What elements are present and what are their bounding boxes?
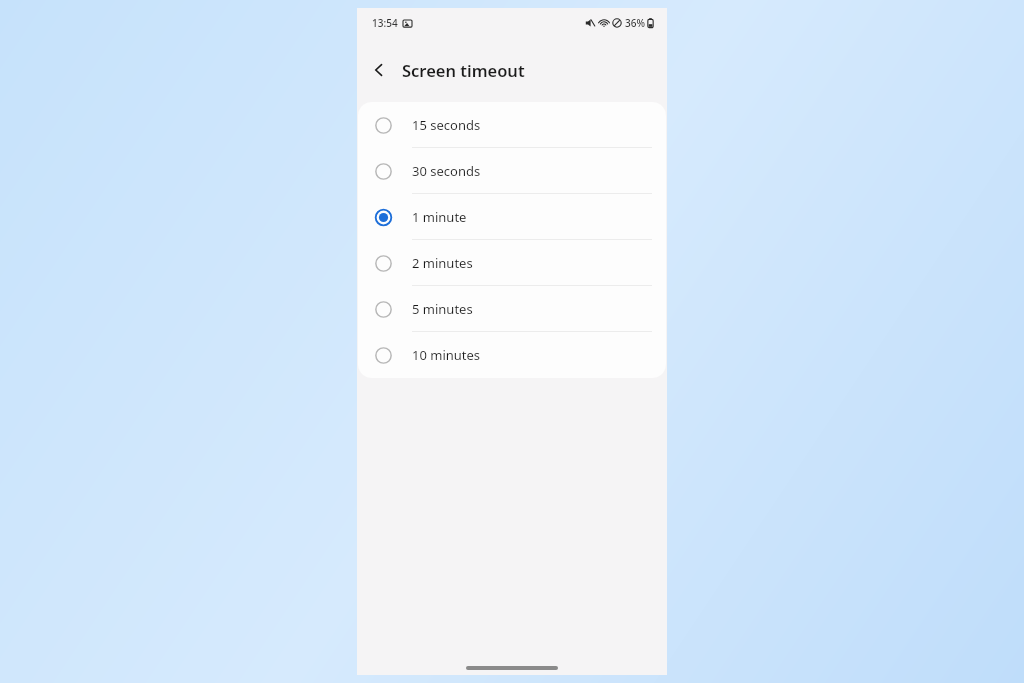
- staticText: Screen timeout: [402, 59, 525, 81]
- button[interactable]: 30 seconds: [358, 148, 666, 194]
- button[interactable]: Back: [357, 48, 401, 92]
- button[interactable]: 2 minutes: [358, 240, 666, 286]
- staticText: 15 seconds: [412, 116, 481, 134]
- staticText: 10 minutes: [412, 346, 481, 364]
- staticText: 13:54: [372, 16, 398, 30]
- staticText: 1 minute: [412, 208, 467, 226]
- staticText: 2 minutes: [412, 254, 473, 272]
- button[interactable]: 5 minutes: [358, 286, 666, 332]
- button[interactable]: 1 minute: [358, 194, 666, 240]
- staticText: 30 seconds: [412, 162, 481, 180]
- button[interactable]: 15 seconds: [358, 102, 666, 148]
- button[interactable]: 10 minutes: [358, 332, 666, 378]
- staticText: 36%: [625, 16, 645, 30]
- staticText: 5 minutes: [412, 300, 473, 318]
